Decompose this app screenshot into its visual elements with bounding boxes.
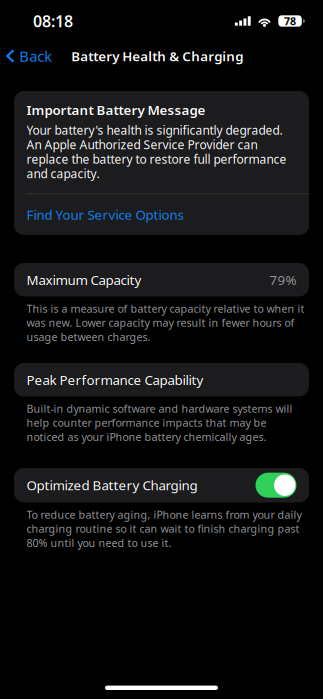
staticText: Maximum Capacity	[26, 271, 141, 289]
staticText: This is a measure of battery capacity re…	[26, 301, 304, 344]
staticText: Your battery's health is significantly d…	[26, 122, 286, 181]
staticText: Find Your Service Options	[26, 206, 183, 223]
staticText: 08:18	[33, 10, 73, 32]
staticText: Back	[19, 46, 52, 66]
staticText: Optimized Battery Charging	[26, 476, 197, 494]
button[interactable]: Back	[0, 40, 58, 72]
staticText: 79%	[269, 271, 296, 289]
staticText: Battery Health & Charging	[71, 47, 243, 65]
staticText: Built-in dynamic software and hardware s…	[26, 401, 292, 444]
staticText: Important Battery Message	[26, 101, 205, 119]
button[interactable]: Optimized Battery Charging	[0, 468, 323, 502]
staticText: To reduce battery aging, iPhone learns f…	[26, 507, 301, 550]
button[interactable]: Peak Performance Capability	[0, 363, 323, 396]
button[interactable]: Maximum Capacity	[0, 263, 323, 296]
staticText: Peak Performance Capability	[26, 371, 203, 388]
staticText: 78	[284, 14, 296, 28]
button[interactable]: Find Your Service Options	[14, 194, 309, 235]
